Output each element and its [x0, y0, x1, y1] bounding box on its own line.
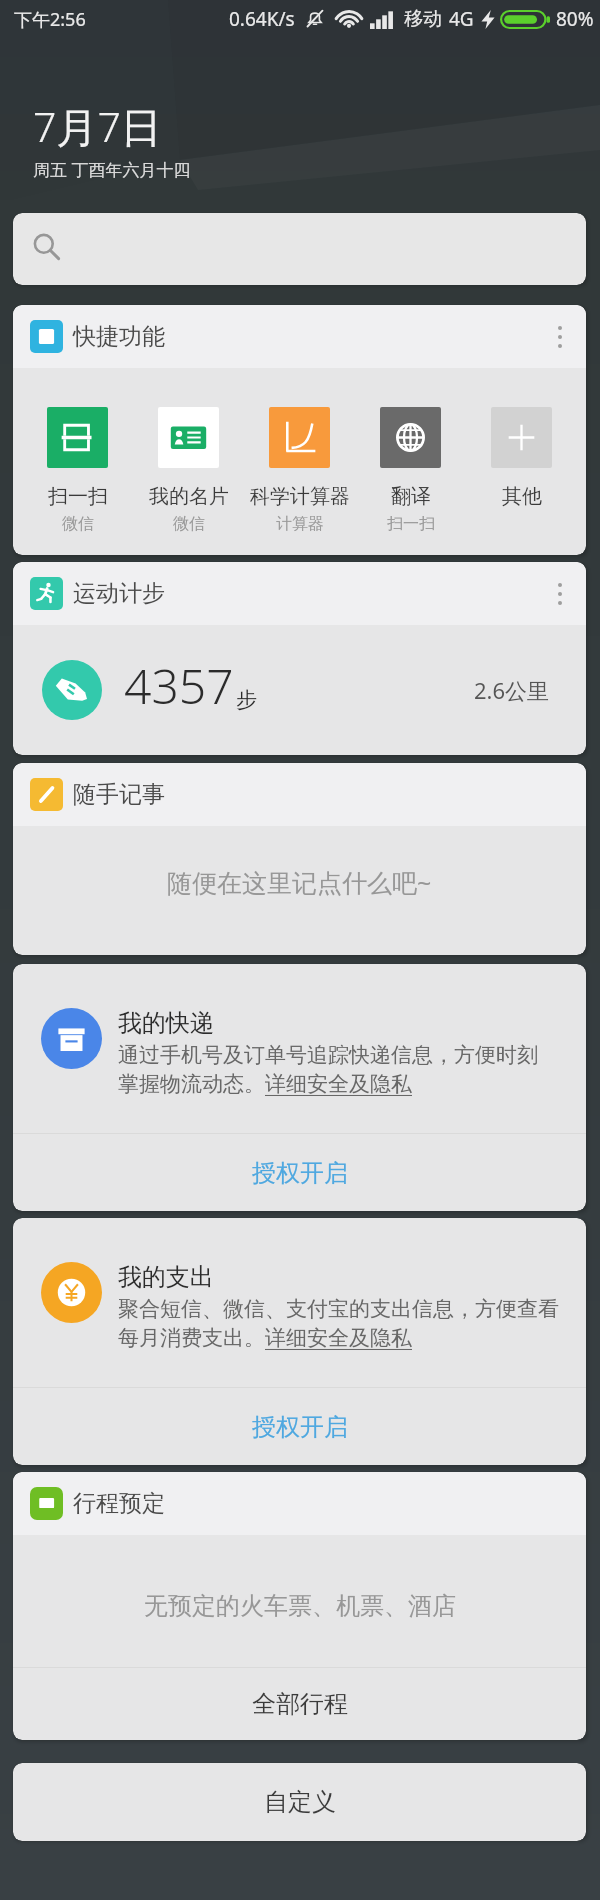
staticText: 翻译: [391, 484, 431, 509]
staticText: 运动计步: [73, 579, 165, 608]
button[interactable]: 快捷功能: [13, 305, 586, 368]
staticText: 我的名片: [149, 484, 229, 509]
staticText: 其他: [502, 484, 542, 509]
staticText: 下午2:56: [14, 7, 86, 32]
button[interactable]: 其他: [466, 407, 577, 509]
staticText: 7月7日: [33, 98, 162, 154]
button[interactable]: More options: [545, 322, 575, 352]
staticText: 扫一扫: [48, 484, 108, 509]
staticText: 科学计算器: [250, 484, 350, 509]
staticText: 每月消费支出。: [118, 1325, 265, 1351]
staticText: 我的快递: [118, 1008, 214, 1038]
button[interactable]: 运动计步: [13, 562, 586, 625]
staticText: 全部行程: [252, 1689, 348, 1719]
button[interactable]: 扫一扫: [22, 407, 133, 534]
staticText: 我的支出: [118, 1262, 214, 1292]
staticText: 通过手机号及订单号追踪快递信息，方便时刻: [118, 1042, 538, 1068]
staticText: 扫一扫: [387, 514, 435, 534]
button[interactable]: 我的支出: [13, 1218, 586, 1387]
button[interactable]: 随便在这里记点什么吧~: [13, 826, 586, 955]
staticText: 聚合短信、微信、支付宝的支出信息，方便查看: [118, 1296, 559, 1322]
button[interactable]: 我的名片: [133, 407, 244, 534]
staticText: 步: [236, 687, 257, 713]
staticText: 自定义: [264, 1787, 336, 1817]
staticText: 2.6公里: [474, 675, 550, 705]
staticText: 0.64K/s: [229, 6, 295, 32]
staticText: 微信: [173, 514, 205, 534]
staticText: 4G: [449, 6, 474, 32]
button[interactable]: 行程预定: [13, 1472, 586, 1535]
button[interactable]: Search: [13, 213, 586, 285]
button[interactable]: 详细安全及隐私: [265, 1071, 412, 1097]
staticText: 掌握物流动态。: [118, 1071, 265, 1097]
staticText: 随手记事: [73, 780, 165, 809]
staticText: 移动: [404, 7, 442, 31]
staticText: 微信: [62, 514, 94, 534]
staticText: 行程预定: [73, 1489, 165, 1518]
button[interactable]: More options: [545, 579, 575, 609]
staticText: 随便在这里记点什么吧~: [167, 865, 432, 899]
staticText: 计算器: [276, 514, 324, 534]
button[interactable]: 随手记事: [13, 763, 586, 826]
button[interactable]: 自定义: [13, 1763, 586, 1841]
staticText: 4357: [124, 653, 234, 718]
staticText: 授权开启: [252, 1412, 348, 1442]
button[interactable]: 翻译: [355, 407, 466, 534]
button[interactable]: 全部行程: [13, 1668, 586, 1740]
staticText: 周五 丁酉年六月十四: [33, 158, 191, 181]
button[interactable]: 授权开启: [13, 1134, 586, 1211]
button[interactable]: 4357: [13, 625, 586, 755]
staticText: 80%: [556, 6, 594, 32]
button[interactable]: 授权开启: [13, 1388, 586, 1465]
staticText: 授权开启: [252, 1158, 348, 1188]
button[interactable]: 详细安全及隐私: [265, 1325, 412, 1351]
staticText: 快捷功能: [73, 322, 165, 351]
staticText: 无预定的火车票、机票、酒店: [144, 1591, 456, 1621]
button[interactable]: 我的快递: [13, 964, 586, 1133]
button[interactable]: 科学计算器: [244, 407, 355, 534]
